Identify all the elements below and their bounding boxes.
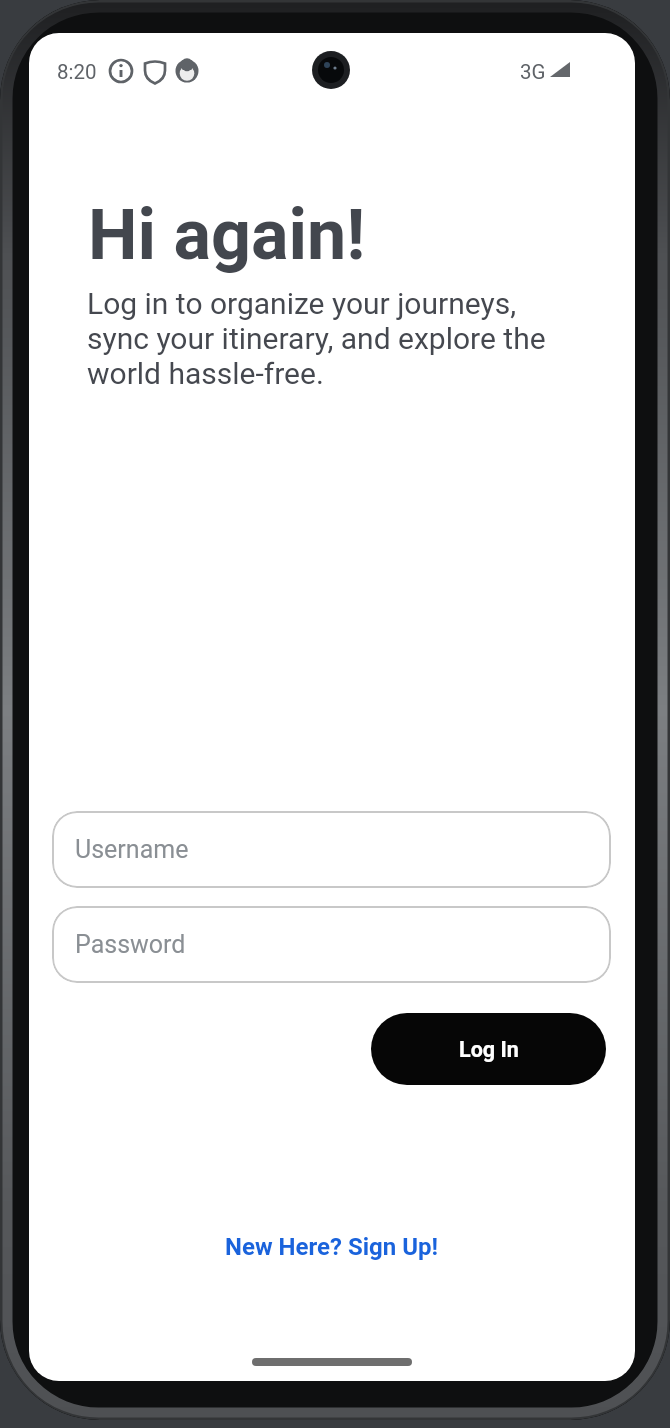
button[interactable]: Username xyxy=(52,811,611,888)
staticText: Hi again! xyxy=(88,194,366,276)
staticText: Log In xyxy=(459,1037,519,1062)
staticText: 8:20 xyxy=(57,60,97,84)
button[interactable]: New Here? Sign Up! xyxy=(199,1222,464,1272)
staticText: Username xyxy=(75,835,189,864)
button[interactable]: Log In xyxy=(371,1013,606,1085)
staticText: New Here? Sign Up! xyxy=(225,1233,439,1261)
button[interactable]: Password xyxy=(52,906,611,983)
staticText: Log in to organize your journeys, sync y… xyxy=(87,286,546,391)
staticText: 3G xyxy=(520,60,546,84)
staticText: Password xyxy=(75,930,186,959)
